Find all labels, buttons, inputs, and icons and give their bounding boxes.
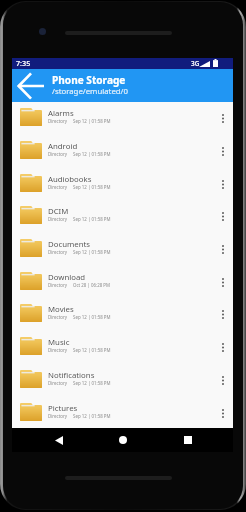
staticText: DCIM bbox=[48, 206, 198, 217]
staticText: Music bbox=[48, 337, 198, 348]
staticText: Documents bbox=[48, 239, 198, 250]
staticText: Directory bbox=[48, 413, 67, 419]
button[interactable]: More options bbox=[212, 200, 233, 233]
button[interactable]: Back bbox=[40, 428, 77, 452]
staticText: 7:35 bbox=[16, 58, 31, 68]
staticText: Movies bbox=[48, 304, 198, 315]
staticText: Directory bbox=[48, 216, 67, 222]
staticText: Pictures bbox=[48, 403, 198, 414]
staticText: Directory bbox=[48, 282, 67, 288]
button[interactable]: More options bbox=[212, 266, 233, 299]
button[interactable]: Back bbox=[14, 69, 46, 102]
button[interactable]: More options bbox=[212, 331, 233, 364]
staticText: Notifications bbox=[48, 370, 198, 381]
staticText: Download bbox=[48, 272, 198, 283]
staticText: Audiobooks bbox=[48, 174, 198, 185]
button[interactable]: Pictures bbox=[12, 397, 233, 430]
button[interactable]: More options bbox=[212, 233, 233, 266]
button[interactable]: More options bbox=[212, 298, 233, 331]
button[interactable]: More options bbox=[212, 102, 233, 135]
staticText: Directory bbox=[48, 118, 67, 124]
button[interactable]: More options bbox=[212, 168, 233, 201]
staticText: Phone Storage bbox=[52, 73, 126, 87]
staticText: Sep 12 | 01:58 PM bbox=[73, 413, 111, 419]
staticText: Sep 12 | 01:58 PM bbox=[73, 118, 111, 124]
staticText: Android bbox=[48, 141, 198, 152]
button[interactable]: More options bbox=[212, 364, 233, 397]
button[interactable]: DCIM bbox=[12, 200, 233, 233]
staticText: Sep 12 | 01:58 PM bbox=[73, 249, 111, 255]
staticText: Sep 12 | 01:58 PM bbox=[73, 314, 111, 320]
button[interactable]: More options bbox=[212, 135, 233, 168]
staticText: Directory bbox=[48, 380, 67, 386]
button[interactable]: Movies bbox=[12, 298, 233, 331]
staticText: Directory bbox=[48, 151, 67, 157]
staticText: Alarms bbox=[48, 108, 198, 119]
staticText: Sep 12 | 01:58 PM bbox=[73, 184, 111, 190]
staticText: Sep 12 | 01:58 PM bbox=[73, 380, 111, 386]
button[interactable]: Home bbox=[104, 428, 141, 452]
button[interactable]: Music bbox=[12, 331, 233, 364]
staticText: /storage/emulated/0 bbox=[52, 86, 128, 97]
button[interactable]: More options bbox=[212, 397, 233, 430]
button[interactable]: Download bbox=[12, 266, 233, 299]
button[interactable]: Alarms bbox=[12, 102, 233, 135]
staticText: Directory bbox=[48, 347, 67, 353]
staticText: Sep 12 | 01:58 PM bbox=[73, 347, 111, 353]
staticText: Sep 12 | 01:58 PM bbox=[73, 151, 111, 157]
staticText: Directory bbox=[48, 249, 67, 255]
staticText: Directory bbox=[48, 314, 67, 320]
button[interactable]: Documents bbox=[12, 233, 233, 266]
staticText: 3G bbox=[191, 59, 200, 68]
staticText: Sep 12 | 01:58 PM bbox=[73, 216, 111, 222]
button[interactable]: Android bbox=[12, 135, 233, 168]
button[interactable]: Recents bbox=[169, 428, 206, 452]
staticText: Oct 28 | 06:28 PM bbox=[73, 282, 110, 288]
button[interactable]: Notifications bbox=[12, 364, 233, 397]
staticText: Directory bbox=[48, 184, 67, 190]
button[interactable]: Audiobooks bbox=[12, 168, 233, 201]
